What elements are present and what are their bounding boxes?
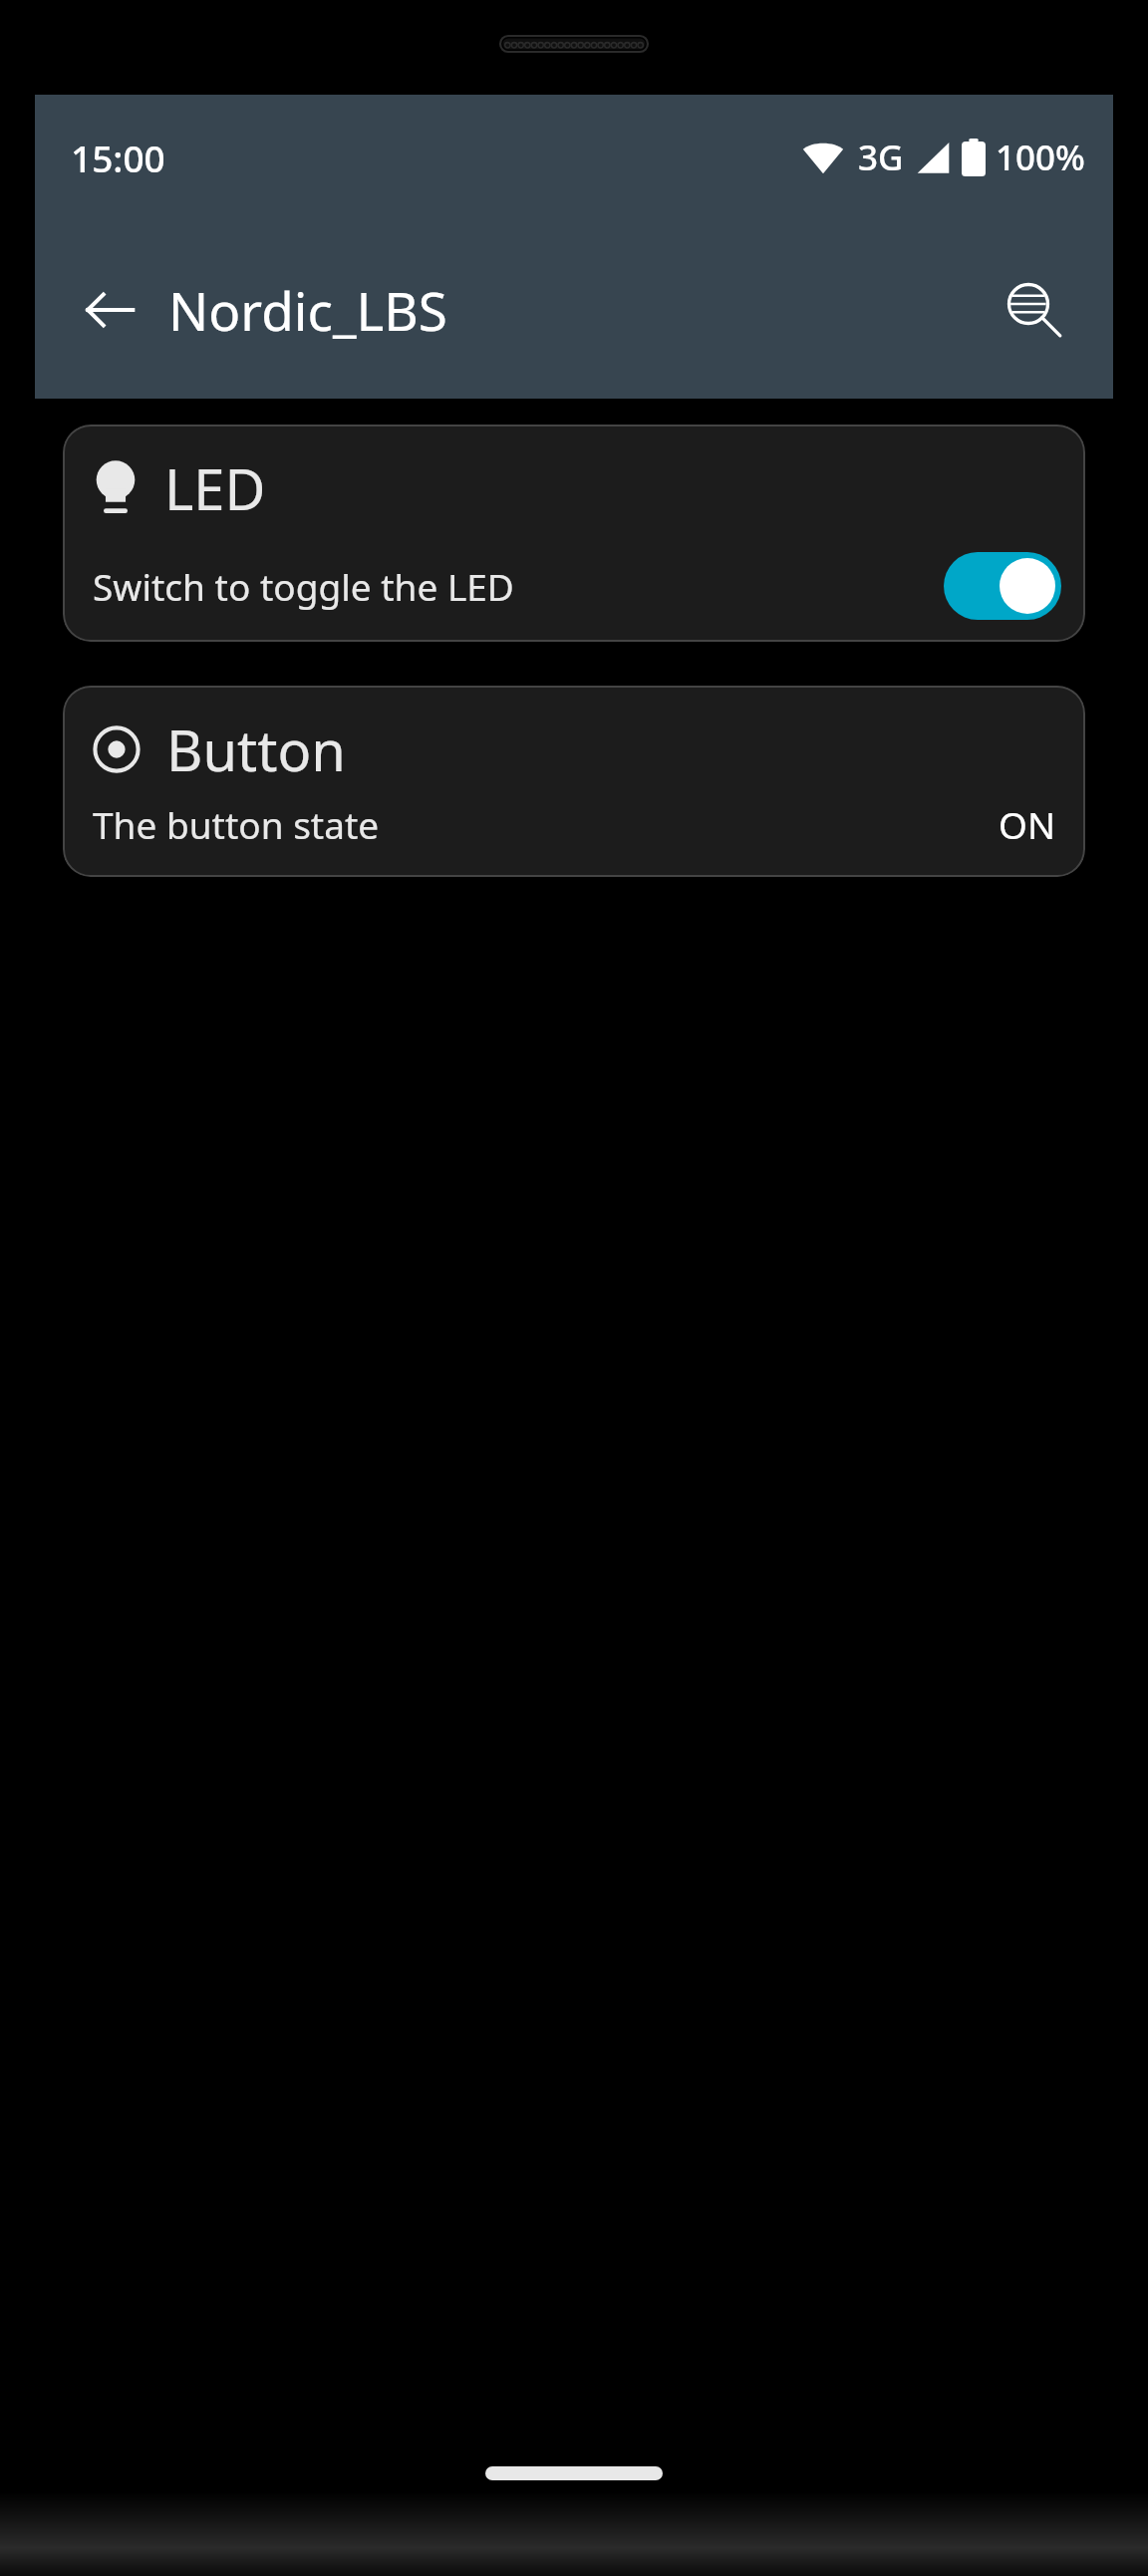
staticText: 3G (858, 134, 904, 181)
button[interactable]: Search (990, 265, 1079, 355)
staticText: ON (998, 799, 1055, 849)
button[interactable]: Toggle LED (944, 552, 1061, 620)
staticText: 100% (996, 134, 1085, 181)
staticText: The button state (93, 799, 380, 849)
button[interactable]: Button (63, 686, 1085, 877)
staticText: Button (166, 712, 346, 787)
staticText: LED (164, 450, 266, 526)
button[interactable]: LED (63, 425, 1085, 642)
button[interactable]: Back (69, 269, 150, 351)
staticText: Nordic_LBS (168, 274, 447, 346)
staticText: 15:00 (71, 133, 165, 182)
staticText: Switch to toggle the LED (93, 561, 514, 611)
